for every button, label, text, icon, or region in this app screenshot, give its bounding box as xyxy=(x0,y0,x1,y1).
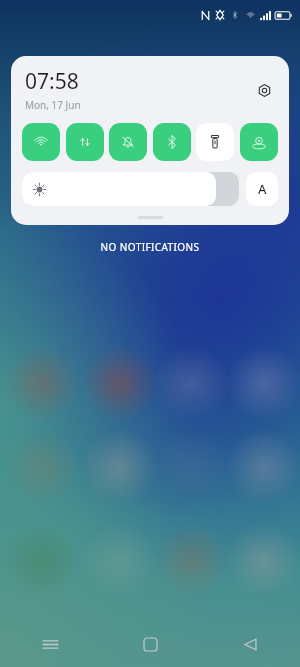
staticText: A xyxy=(258,180,267,198)
button[interactable]: Silent mode xyxy=(109,123,147,161)
staticText: Mon, 17 Jun xyxy=(25,98,81,112)
button[interactable]: Wi-Fi xyxy=(22,123,60,161)
button[interactable]: Settings xyxy=(251,77,277,103)
staticText: NO NOTIFICATIONS xyxy=(0,240,300,254)
button[interactable]: Mobile data xyxy=(66,123,104,161)
button[interactable]: Auto brightness xyxy=(246,172,278,206)
button[interactable]: Home xyxy=(132,626,168,662)
staticText: 07:58 xyxy=(25,67,79,96)
button[interactable]: Bluetooth xyxy=(153,123,191,161)
button[interactable]: Back xyxy=(232,626,268,662)
button[interactable]: Recents xyxy=(32,626,68,662)
button[interactable]: Brightness xyxy=(22,172,239,206)
button[interactable]: Location xyxy=(240,123,278,161)
button[interactable]: Flashlight xyxy=(196,123,234,161)
